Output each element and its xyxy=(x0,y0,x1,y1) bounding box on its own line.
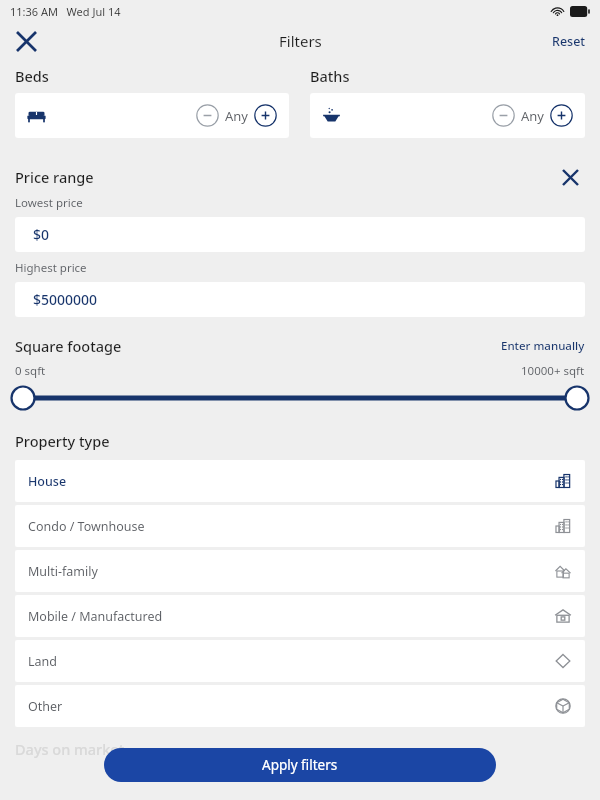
button[interactable]: $5000000 xyxy=(15,282,585,317)
staticText: Multi-family xyxy=(28,563,98,580)
staticText: Mobile / Manufactured xyxy=(28,608,163,625)
button[interactable]: Reset xyxy=(538,25,600,58)
button[interactable]: Other xyxy=(15,685,585,727)
button[interactable]: Multi-family xyxy=(15,550,585,592)
button[interactable]: Decrease Baths xyxy=(492,104,515,127)
staticText: 11:36 AM Wed Jul 14 xyxy=(10,4,121,19)
button[interactable]: Mobile / Manufactured xyxy=(15,595,585,637)
staticText: Enter manually xyxy=(501,338,585,354)
staticText: Reset xyxy=(552,33,586,50)
staticText: Square footage xyxy=(15,336,122,356)
staticText: Any xyxy=(225,107,248,125)
staticText: Any xyxy=(521,107,544,125)
staticText: Land xyxy=(28,653,57,670)
staticText: Beds xyxy=(15,66,49,86)
button[interactable]: Decrease Beds xyxy=(15,93,289,138)
button[interactable]: Apply filters xyxy=(104,748,496,782)
staticText: Baths xyxy=(310,66,350,86)
staticText: Price range xyxy=(15,167,94,187)
staticText: Other xyxy=(28,698,63,715)
staticText: Highest price xyxy=(15,260,87,276)
button[interactable]: Decrease Baths xyxy=(310,93,585,138)
button[interactable]: House xyxy=(15,460,585,502)
staticText: $5000000 xyxy=(33,290,98,309)
button[interactable]: Land xyxy=(15,640,585,682)
staticText: Lowest price xyxy=(15,195,83,211)
button[interactable]: Increase Baths xyxy=(550,104,573,127)
button[interactable]: Condo / Townhouse xyxy=(15,505,585,547)
button[interactable]: Enter manually xyxy=(501,338,585,354)
staticText: Filters xyxy=(279,31,322,51)
button[interactable]: Clear price range xyxy=(555,162,585,192)
staticText: Property type xyxy=(15,431,110,451)
staticText: House xyxy=(28,473,67,490)
staticText: Days on market xyxy=(15,739,125,759)
staticText: $0 xyxy=(33,225,50,244)
button[interactable]: Decrease Beds xyxy=(196,104,219,127)
staticText: Condo / Townhouse xyxy=(28,518,145,535)
staticText: 0 sqft xyxy=(15,363,46,379)
staticText: Apply filters xyxy=(262,756,338,774)
button[interactable]: Increase Beds xyxy=(254,104,277,127)
staticText: 10000+ sqft xyxy=(521,363,585,379)
button[interactable]: $0 xyxy=(15,217,585,252)
button[interactable]: Close xyxy=(6,22,46,60)
